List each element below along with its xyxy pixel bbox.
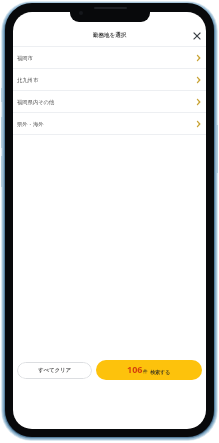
button[interactable]: 北九州市 bbox=[13, 69, 206, 90]
staticText: 福岡市 bbox=[17, 55, 33, 62]
button[interactable]: 106 bbox=[96, 360, 202, 380]
staticText: 北九州市 bbox=[17, 77, 39, 84]
staticText: 106 bbox=[127, 363, 143, 375]
staticText: 福岡県内その他 bbox=[17, 99, 55, 106]
button[interactable]: 福岡市 bbox=[13, 47, 206, 68]
button[interactable]: Close bbox=[190, 29, 204, 43]
button[interactable]: 福岡県内その他 bbox=[13, 91, 206, 112]
button[interactable]: 県外・海外 bbox=[13, 113, 206, 134]
staticText: 勤務地を選択 bbox=[93, 32, 127, 39]
staticText: 県外・海外 bbox=[17, 121, 44, 128]
staticText: 件 bbox=[143, 369, 148, 375]
staticText: すべてクリア bbox=[38, 367, 72, 374]
button[interactable]: すべてクリア bbox=[17, 362, 92, 379]
staticText: 検索する bbox=[150, 369, 171, 375]
